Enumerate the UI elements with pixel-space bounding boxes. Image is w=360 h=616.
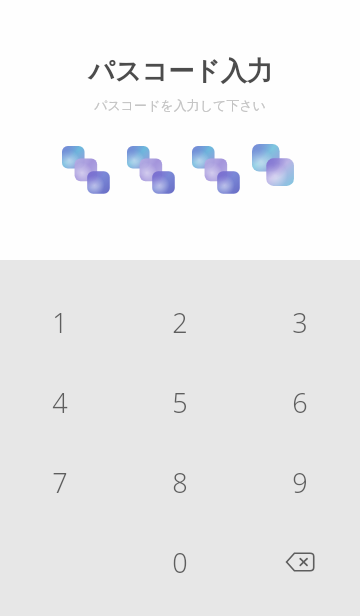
staticText: 1 — [52, 304, 68, 341]
staticText: 6 — [292, 384, 308, 421]
staticText: 5 — [172, 384, 188, 421]
button[interactable]: 9 — [240, 442, 360, 522]
button[interactable]: Backspace — [240, 522, 360, 602]
button[interactable]: 3 — [240, 282, 360, 362]
staticText: 9 — [292, 464, 308, 501]
button[interactable]: 8 — [120, 442, 240, 522]
button[interactable]: 5 — [120, 362, 240, 442]
button[interactable]: 1 — [0, 282, 120, 362]
button[interactable]: 2 — [120, 282, 240, 362]
staticText: 0 — [172, 544, 188, 581]
staticText: パスコードを入力して下さい — [94, 97, 266, 113]
staticText: 3 — [292, 304, 308, 341]
button[interactable]: 7 — [0, 442, 120, 522]
staticText: 8 — [172, 464, 188, 501]
button[interactable]: 6 — [240, 362, 360, 442]
staticText: 7 — [52, 464, 68, 501]
staticText: 4 — [52, 384, 68, 421]
button[interactable]: 4 — [0, 362, 120, 442]
staticText: パスコード入力 — [88, 55, 273, 88]
button[interactable]: 0 — [120, 522, 240, 602]
staticText: 2 — [172, 304, 188, 341]
